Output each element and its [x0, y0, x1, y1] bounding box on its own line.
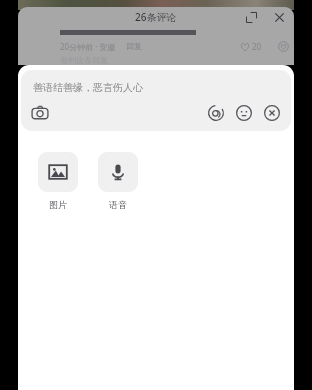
button[interactable]: 善语结善缘，恶言伤人心: [21, 70, 291, 131]
staticText: 图片: [49, 199, 67, 210]
staticText: 20分钟前 · 安徽: [60, 41, 116, 52]
button[interactable]: Camera: [30, 103, 50, 123]
button[interactable]: Emoji: [234, 103, 254, 123]
staticText: 看到这条回复: [60, 55, 108, 65]
button[interactable]: Like: [276, 39, 290, 53]
button[interactable]: 20: [240, 41, 262, 52]
button[interactable]: Clear: [262, 103, 282, 123]
button[interactable]: Close: [268, 7, 290, 27]
staticText: 语音: [109, 199, 127, 210]
button[interactable]: 语音: [98, 152, 138, 210]
button[interactable]: 回复: [126, 41, 142, 51]
staticText: 26条评论: [135, 10, 177, 24]
button[interactable]: Expand: [240, 7, 262, 27]
staticText: 20: [252, 41, 262, 52]
button[interactable]: Mention: [206, 103, 226, 123]
button[interactable]: 图片: [38, 152, 78, 210]
staticText: 善语结善缘，恶言伤人心: [33, 81, 143, 94]
